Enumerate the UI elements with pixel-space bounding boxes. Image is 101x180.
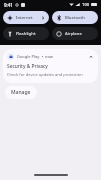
staticText: Check for device updates and protection	[7, 72, 83, 77]
button[interactable]: Manage	[5, 86, 37, 99]
staticText: Bluetooth	[65, 15, 85, 21]
staticText: 100	[82, 2, 90, 8]
staticText: now	[45, 54, 53, 59]
staticText: Google Play	[17, 54, 40, 59]
button[interactable]: Internet	[3, 11, 49, 24]
staticText: Internet	[16, 15, 33, 21]
button[interactable]: Flashlight	[3, 27, 49, 40]
button[interactable]: Expand notification	[87, 53, 94, 60]
button[interactable]: Airplane	[52, 27, 98, 40]
staticText: Flashlight	[16, 31, 36, 37]
staticText: Manage	[11, 89, 31, 96]
button[interactable]: Bluetooth	[52, 11, 98, 24]
staticText: Security & Privacy	[7, 63, 48, 70]
button[interactable]: Google Play	[3, 49, 98, 83]
staticText: Airplane	[65, 31, 82, 37]
staticText: 9:41	[4, 2, 13, 8]
